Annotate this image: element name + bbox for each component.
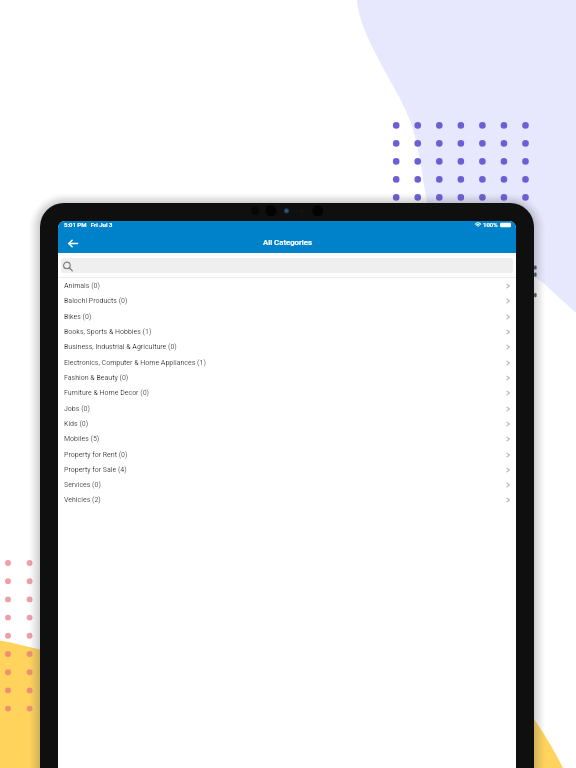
button[interactable]: Property for Rent (0) — [58, 447, 516, 462]
staticText: Jobs (0) — [64, 405, 90, 413]
button[interactable]: Back — [65, 235, 81, 251]
staticText: Property for Rent (0) — [64, 451, 128, 459]
button[interactable]: Jobs (0) — [58, 401, 516, 416]
button[interactable]: Furniture & Home Decor (0) — [58, 385, 516, 400]
staticText: 5:01 PM Fri Jul 3 — [64, 221, 113, 228]
staticText: Mobiles (5) — [64, 435, 100, 443]
button[interactable]: Balochi Products (0) — [58, 293, 516, 308]
button[interactable]: Services (0) — [58, 477, 516, 492]
button[interactable]: Business, Industrial & Agriculture (0) — [58, 339, 516, 354]
staticText: Vehicles (2) — [64, 496, 101, 504]
staticText: Furniture & Home Decor (0) — [64, 389, 149, 397]
staticText: Services (0) — [64, 481, 101, 489]
staticText: Balochi Products (0) — [64, 297, 128, 305]
button[interactable]: Books, Sports & Hobbies (1) — [58, 324, 516, 339]
staticText: Books, Sports & Hobbies (1) — [64, 328, 152, 336]
button[interactable]: Fashion & Beauty (0) — [58, 370, 516, 385]
button[interactable]: Vehicles (2) — [58, 492, 516, 507]
button[interactable]: Property for Sale (4) — [58, 462, 516, 477]
staticText: Kids (0) — [64, 420, 89, 428]
button[interactable]: Mobiles (5) — [58, 431, 516, 446]
button[interactable]: Electronics, Computer & Home Appliances … — [58, 355, 516, 370]
staticText: All Categories — [263, 238, 312, 247]
button[interactable]: Kids (0) — [58, 416, 516, 431]
staticText: 100% — [483, 221, 498, 228]
staticText: Bikes (0) — [64, 313, 92, 321]
staticText: Electronics, Computer & Home Appliances … — [64, 359, 206, 367]
staticText: Fashion & Beauty (0) — [64, 374, 129, 382]
staticText: Animals (0) — [64, 282, 100, 290]
button[interactable]: Search — [61, 258, 513, 273]
button[interactable]: Animals (0) — [58, 278, 516, 293]
button[interactable]: Bikes (0) — [58, 309, 516, 324]
staticText: Property for Sale (4) — [64, 466, 127, 474]
staticText: Business, Industrial & Agriculture (0) — [64, 343, 177, 351]
